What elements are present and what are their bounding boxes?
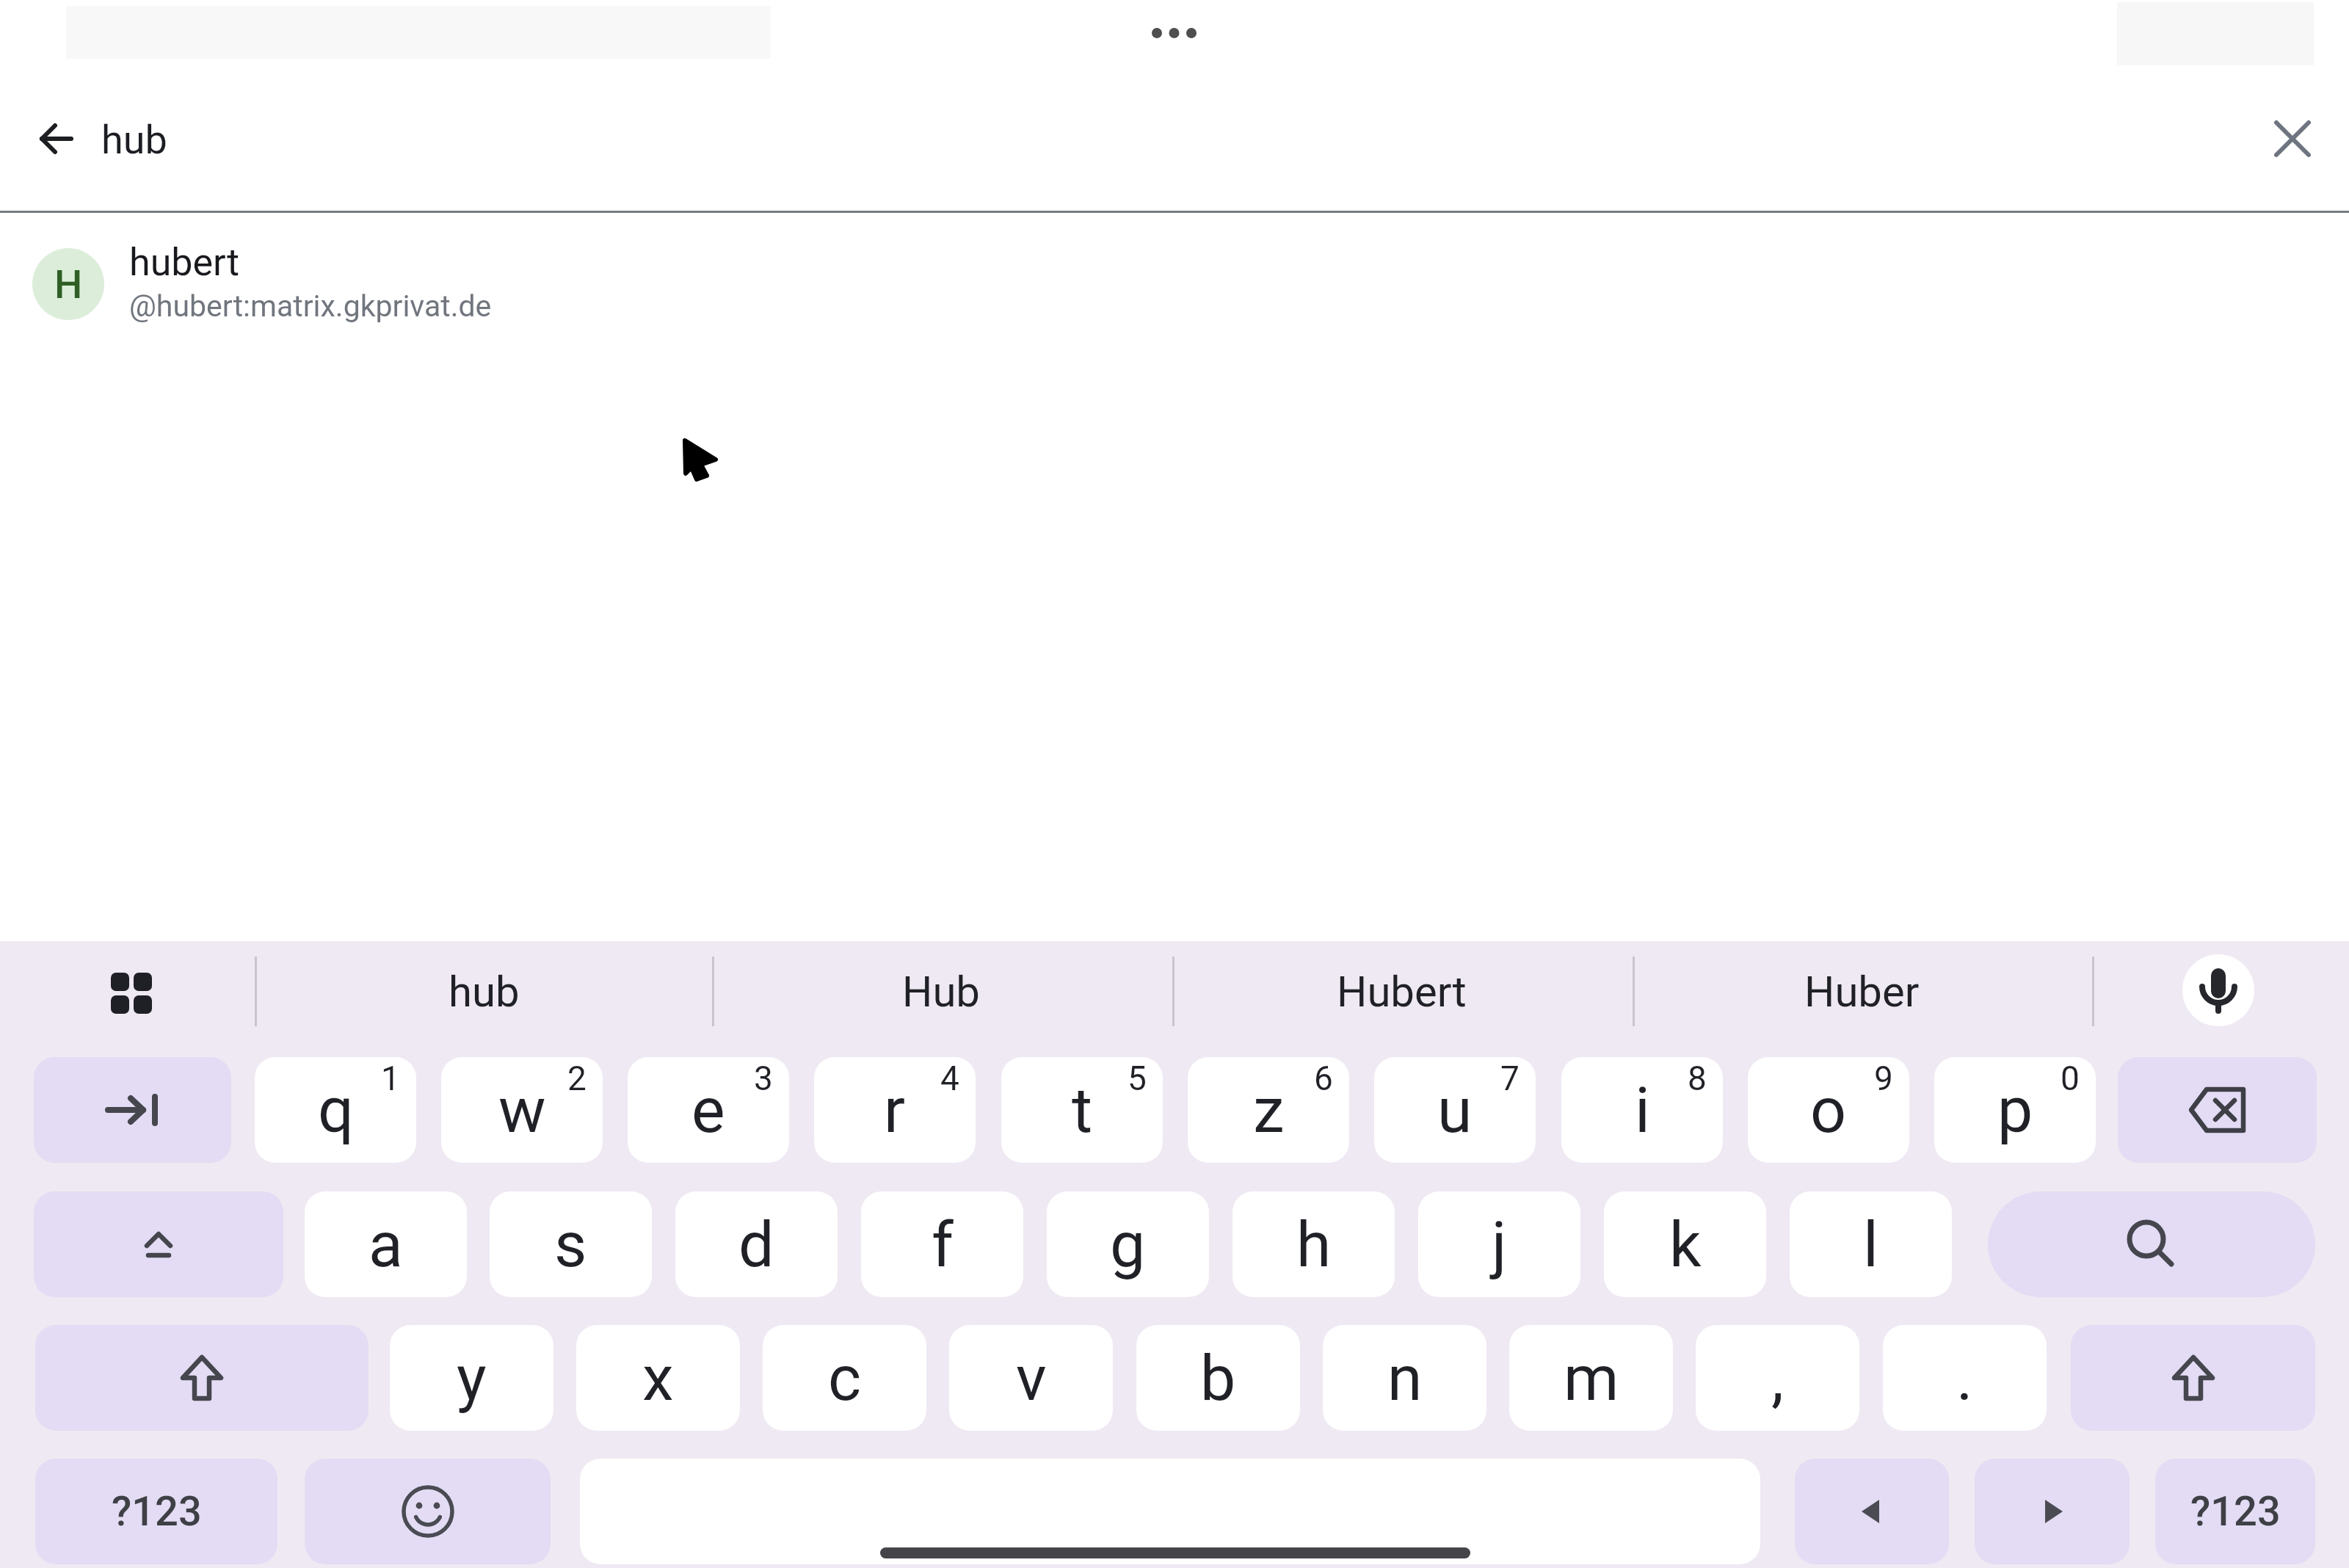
button[interactable]: z [1188, 1057, 1349, 1163]
staticText: w [498, 1073, 546, 1147]
button[interactable]: i [1561, 1057, 1723, 1163]
button[interactable]: b [1136, 1325, 1300, 1431]
staticText: 4 [940, 1059, 959, 1098]
button[interactable] [1975, 1459, 2130, 1564]
staticText: 6 [1314, 1059, 1333, 1098]
button[interactable]: y [390, 1325, 553, 1431]
button[interactable]: o [1748, 1057, 1909, 1163]
button[interactable]: c [763, 1325, 926, 1431]
button[interactable]: Hub [714, 955, 1169, 1028]
button[interactable]: . [1883, 1325, 2047, 1431]
staticText: j [1492, 1208, 1507, 1282]
staticText: q [318, 1073, 354, 1147]
button[interactable]: m [1509, 1325, 1673, 1431]
button[interactable] [34, 1191, 283, 1297]
staticText: o [1810, 1073, 1847, 1147]
button[interactable] [34, 1057, 231, 1163]
button[interactable]: d [675, 1191, 838, 1297]
staticText: , [1771, 1341, 1784, 1415]
button[interactable] [27, 109, 86, 168]
staticText: Huber [1804, 967, 1920, 1017]
button[interactable] [35, 1325, 368, 1431]
button[interactable]: t [1001, 1057, 1163, 1163]
staticText: d [738, 1208, 774, 1282]
staticText: p [1997, 1073, 2033, 1147]
staticText: y [457, 1341, 487, 1415]
staticText: . [1956, 1341, 1973, 1415]
button[interactable]: a [305, 1191, 467, 1297]
button[interactable]: Huber [1634, 955, 2089, 1028]
staticText: t [1072, 1073, 1093, 1147]
button[interactable]: q [255, 1057, 416, 1163]
staticText: hub [449, 967, 520, 1017]
staticText: Hubert [1337, 967, 1467, 1017]
staticText: h [1296, 1208, 1332, 1282]
button[interactable] [90, 957, 173, 1030]
staticText: f [932, 1208, 954, 1282]
staticText: b [1200, 1341, 1236, 1415]
staticText: e [691, 1073, 725, 1147]
staticText: @hubert:matrix.gkprivat.de [129, 288, 492, 324]
button[interactable] [305, 1459, 551, 1564]
staticText: g [1110, 1208, 1146, 1282]
staticText: l [1863, 1208, 1878, 1282]
staticText: m [1564, 1341, 1619, 1415]
button[interactable]: Hubert [1174, 955, 1629, 1028]
button[interactable]: l [1790, 1191, 1952, 1297]
button[interactable]: r [814, 1057, 976, 1163]
staticText: a [368, 1208, 403, 1282]
button[interactable]: x [576, 1325, 740, 1431]
button[interactable]: w [441, 1057, 603, 1163]
staticText: H [54, 261, 83, 308]
staticText: v [1016, 1341, 1047, 1415]
button[interactable]: p [1934, 1057, 2096, 1163]
button[interactable]: e [628, 1057, 789, 1163]
staticText: ?123 [112, 1487, 202, 1536]
staticText: n [1387, 1341, 1423, 1415]
button[interactable] [1988, 1191, 2315, 1297]
button[interactable]: v [949, 1325, 1113, 1431]
staticText: r [884, 1073, 906, 1147]
staticText: 1 [381, 1059, 400, 1098]
staticText: 2 [567, 1059, 587, 1098]
staticText: 9 [1874, 1059, 1893, 1098]
button[interactable]: g [1047, 1191, 1209, 1297]
staticText: ?123 [2190, 1487, 2281, 1536]
button[interactable] [2182, 954, 2254, 1026]
button[interactable]: , [1696, 1325, 1859, 1431]
staticText: 8 [1688, 1059, 1707, 1098]
button[interactable] [580, 1459, 1760, 1564]
staticText: 0 [2061, 1059, 2080, 1098]
button[interactable]: H [0, 220, 2349, 352]
button[interactable]: hub [256, 955, 711, 1028]
button[interactable]: j [1418, 1191, 1580, 1297]
staticText: k [1669, 1208, 1702, 1282]
button[interactable] [2071, 1325, 2315, 1431]
staticText: 3 [754, 1059, 773, 1098]
button[interactable] [2263, 109, 2322, 168]
staticText: 5 [1128, 1059, 1147, 1098]
button[interactable]: f [861, 1191, 1023, 1297]
button[interactable] [2118, 1057, 2317, 1163]
staticText: s [554, 1208, 587, 1282]
staticText: 7 [1500, 1059, 1520, 1098]
button[interactable]: s [490, 1191, 652, 1297]
staticText: Hub [902, 967, 980, 1017]
staticText: hubert [129, 240, 239, 285]
staticText: u [1437, 1073, 1473, 1147]
staticText: c [828, 1341, 862, 1415]
staticText: x [642, 1341, 674, 1415]
button[interactable] [1795, 1459, 1949, 1564]
button[interactable]: h [1232, 1191, 1395, 1297]
staticText: hub [101, 117, 167, 163]
staticText: z [1253, 1073, 1285, 1147]
button[interactable]: ?123 [2155, 1459, 2315, 1564]
staticText: i [1635, 1073, 1650, 1147]
button[interactable]: u [1374, 1057, 1536, 1163]
button[interactable]: k [1604, 1191, 1766, 1297]
button[interactable]: n [1323, 1325, 1486, 1431]
button[interactable]: ?123 [35, 1459, 277, 1564]
